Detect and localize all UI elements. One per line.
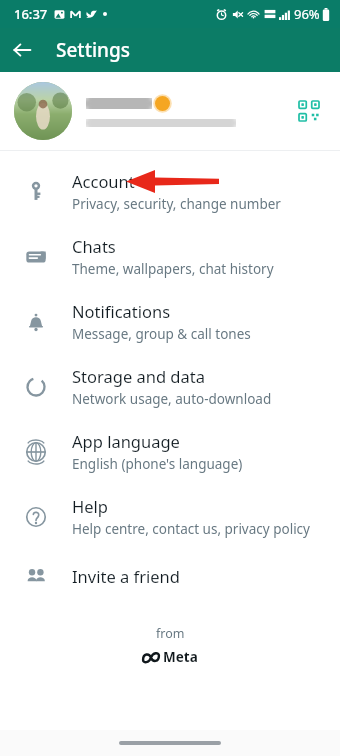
staticText: 96% bbox=[294, 5, 320, 23]
staticText: English (phone's language) bbox=[72, 455, 243, 473]
staticText: Help bbox=[72, 495, 108, 517]
staticText: Notifications bbox=[72, 300, 171, 322]
staticText: from bbox=[156, 625, 185, 642]
staticText: Network usage, auto-download bbox=[72, 390, 272, 408]
staticText: Settings bbox=[56, 37, 130, 63]
button[interactable]: QR code bbox=[0, 72, 340, 150]
button[interactable]: Storage and data bbox=[0, 354, 340, 419]
staticText: Invite a friend bbox=[72, 565, 180, 587]
staticText: Storage and data bbox=[72, 365, 205, 387]
staticText: Meta bbox=[163, 648, 198, 666]
staticText: Account bbox=[72, 170, 135, 192]
staticText: Privacy, security, change number bbox=[72, 195, 281, 213]
button[interactable]: Notifications bbox=[0, 289, 340, 354]
staticText: 16:37 bbox=[14, 5, 48, 23]
button[interactable]: Invite a friend bbox=[0, 549, 340, 603]
staticText: Chats bbox=[72, 235, 116, 257]
button[interactable]: Back bbox=[0, 28, 44, 72]
button[interactable]: App language bbox=[0, 419, 340, 484]
staticText: App language bbox=[72, 430, 180, 452]
staticText: Help centre, contact us, privacy policy bbox=[72, 520, 310, 538]
staticText: Message, group & call tones bbox=[72, 325, 251, 343]
staticText: Theme, wallpapers, chat history bbox=[72, 260, 274, 278]
button[interactable]: Help bbox=[0, 484, 340, 549]
button[interactable]: QR code bbox=[292, 94, 326, 128]
button[interactable]: Chats bbox=[0, 224, 340, 289]
button[interactable]: Account bbox=[0, 159, 340, 224]
